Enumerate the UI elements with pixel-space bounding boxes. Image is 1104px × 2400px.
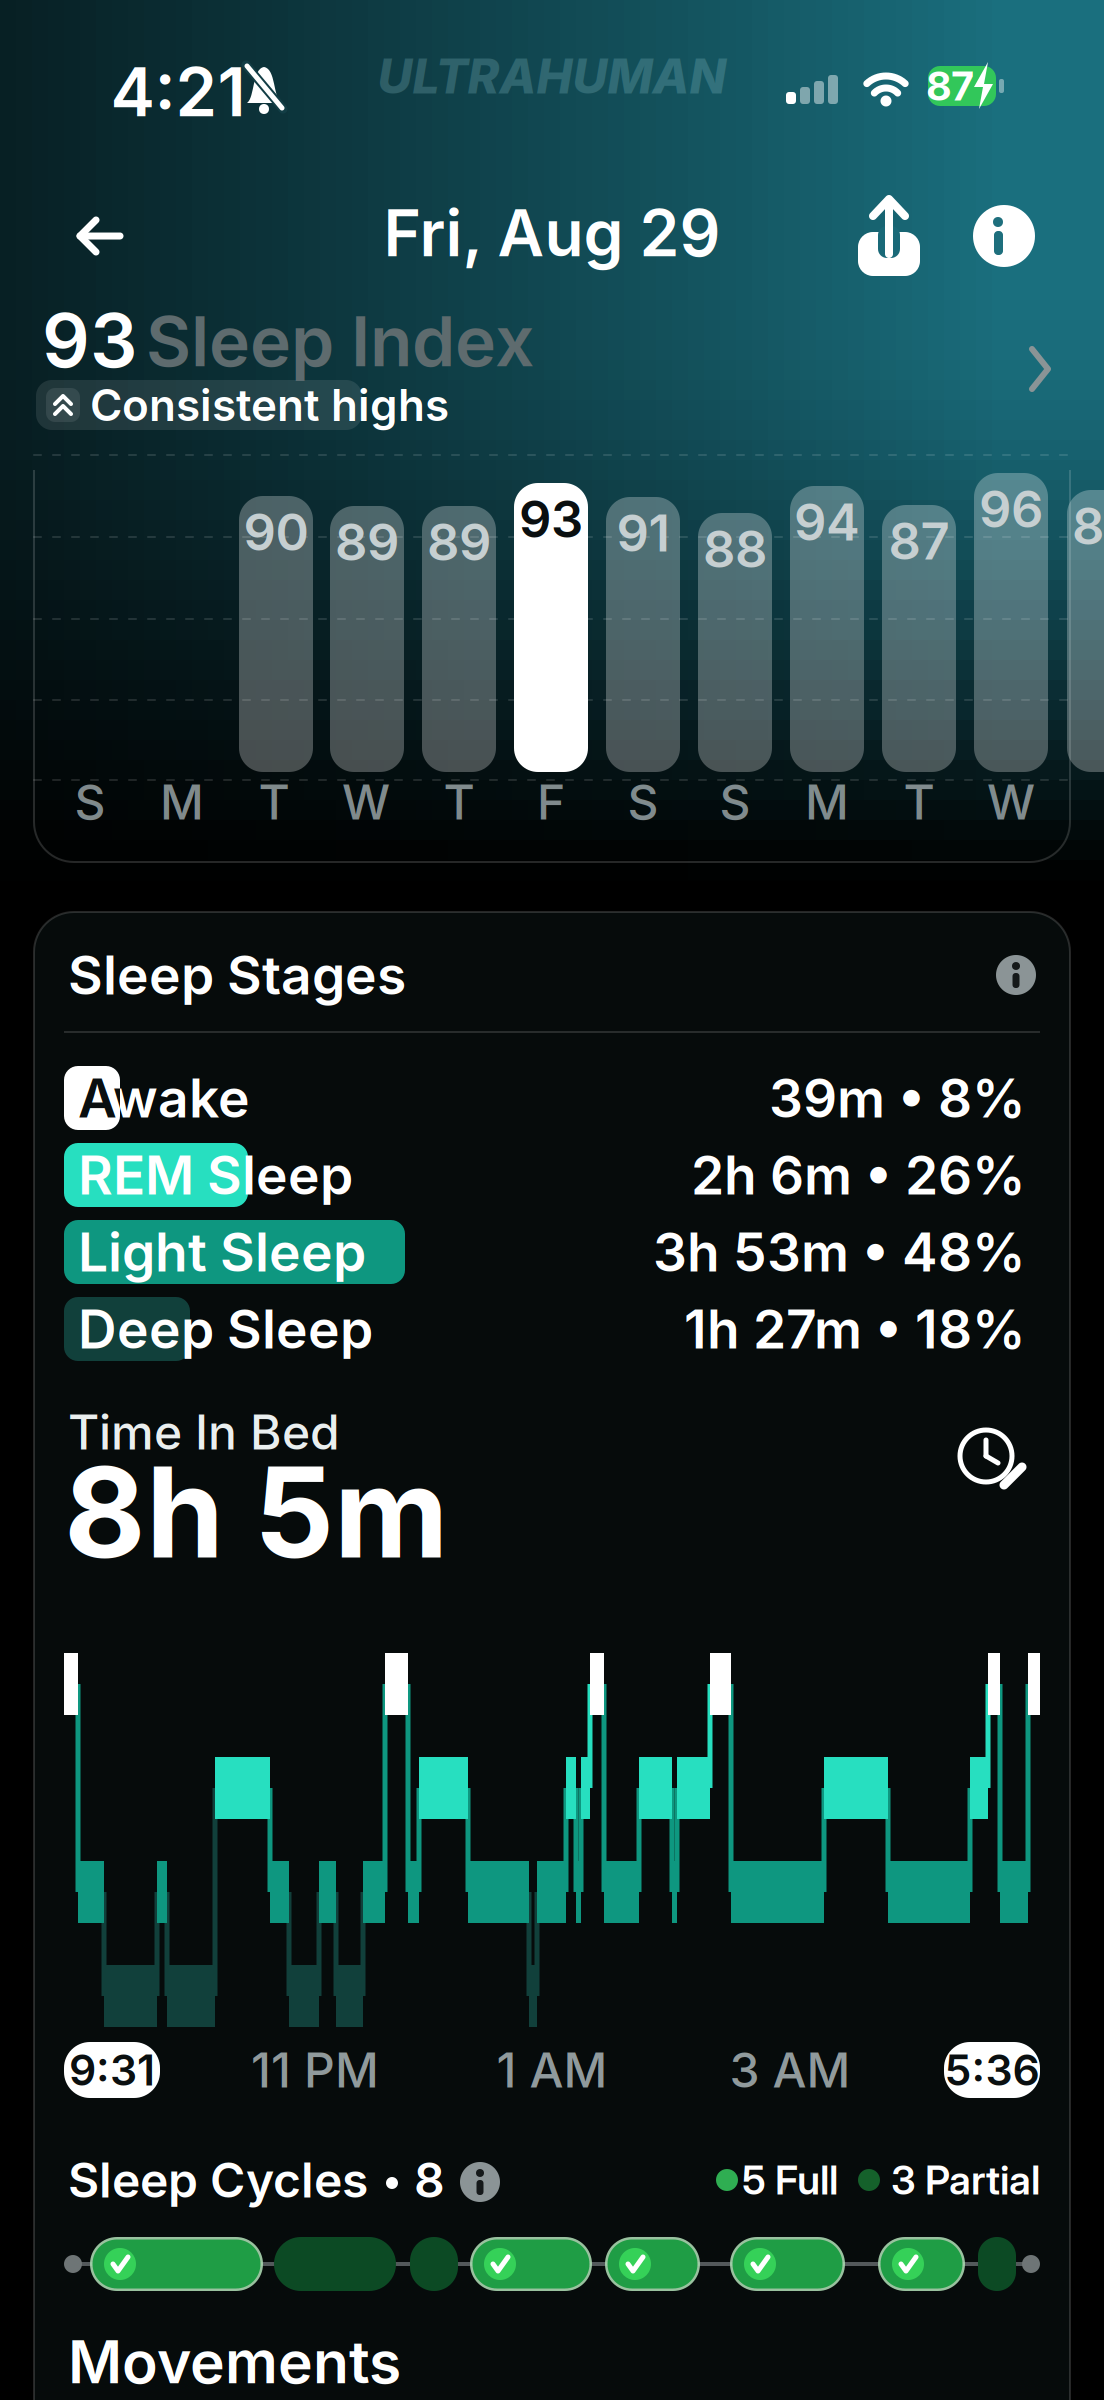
staticText: 93 (519, 488, 583, 550)
staticText: 91 (616, 502, 669, 564)
button[interactable] (458, 2160, 498, 2200)
staticText: 87 (926, 62, 973, 110)
button[interactable]: 9:31 (64, 2042, 160, 2098)
staticText: 5:36 (944, 2044, 1039, 2096)
staticText: 2h 6m • 26% (691, 1143, 1026, 1207)
staticText: REM Sleep (78, 1143, 353, 1207)
staticText: Sleep Stages (68, 943, 406, 1007)
staticText: S (74, 773, 105, 831)
staticText: S (627, 773, 658, 831)
staticText: 39m • 8% (769, 1066, 1026, 1130)
staticText: 87 (888, 510, 949, 572)
staticText: 3h 53m • 48% (653, 1220, 1026, 1284)
staticText: 89 (427, 511, 491, 573)
button[interactable] (854, 194, 924, 278)
staticText: W (342, 773, 390, 831)
staticText: 11 PM (251, 2041, 379, 2099)
staticText: 93 (42, 295, 138, 385)
staticText: 3 Partial (891, 2156, 1040, 2204)
staticText: Awake (78, 1066, 250, 1130)
staticText: 8h 5m (64, 1436, 448, 1588)
staticText: 9:31 (69, 2044, 155, 2096)
button[interactable]: 5:36 (944, 2042, 1040, 2098)
staticText: T (443, 773, 474, 831)
staticText: Fri, Aug 29 (383, 194, 720, 272)
staticText: T (903, 773, 934, 831)
staticText: W (987, 773, 1035, 831)
staticText: 3 AM (729, 2041, 850, 2099)
staticText: Light Sleep (78, 1220, 366, 1284)
staticText: 86 (1072, 495, 1104, 557)
staticText: 5 Full (742, 2156, 838, 2204)
staticText: M (805, 773, 849, 831)
button[interactable] (972, 204, 1036, 268)
staticText: Consistent highs (90, 378, 449, 432)
staticText: 94 (794, 491, 860, 553)
button[interactable] (66, 206, 130, 266)
staticText: Movements (68, 2326, 401, 2397)
staticText: 88 (703, 518, 767, 580)
staticText: 1h 27m • 18% (684, 1297, 1026, 1361)
button[interactable]: 93 (34, 304, 1104, 376)
button[interactable] (958, 1425, 1034, 1495)
staticText: ULTRAHUMAN (377, 47, 726, 105)
staticText: Time In Bed (68, 1403, 340, 1461)
staticText: 96 (979, 478, 1043, 540)
staticText: 4:21 (110, 52, 245, 132)
staticText: T (258, 773, 289, 831)
staticText: F (537, 773, 565, 831)
staticText: M (160, 773, 204, 831)
staticText: S (719, 773, 750, 831)
staticText: Awake (78, 1066, 250, 1130)
button[interactable] (994, 953, 1038, 997)
staticText: 1 AM (496, 2041, 607, 2099)
staticText: Deep Sleep (78, 1297, 373, 1361)
staticText: 90 (243, 501, 308, 563)
staticText: 89 (335, 511, 399, 573)
staticText: Sleep Cycles (68, 2151, 368, 2209)
staticText: Sleep Index (146, 299, 534, 383)
staticText: 8 (414, 2151, 445, 2209)
